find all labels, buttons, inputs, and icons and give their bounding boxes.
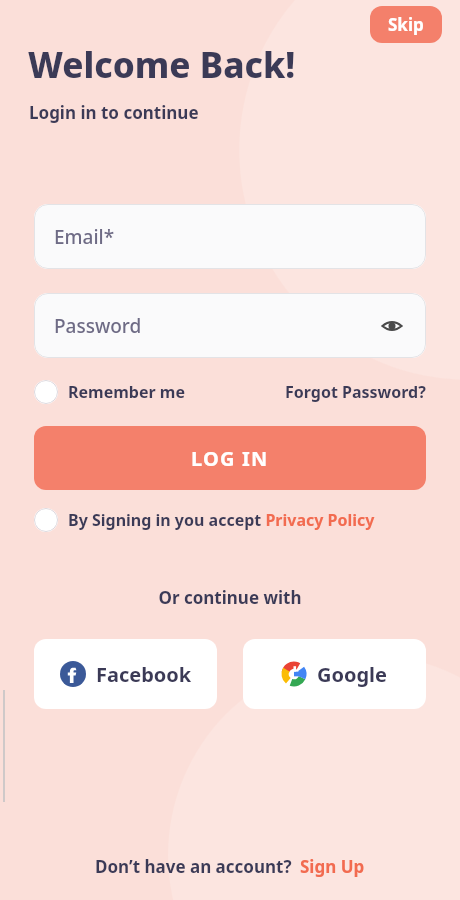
staticText: Sign Up — [300, 855, 365, 878]
button[interactable]: LOG IN — [34, 426, 426, 490]
staticText: Password — [54, 313, 142, 339]
staticText: Or continue with — [0, 586, 460, 609]
staticText: Login in to continue — [29, 101, 199, 124]
staticText: Google — [317, 661, 388, 688]
staticText: LOG IN — [191, 445, 269, 472]
staticText: Remember me — [68, 381, 185, 403]
button[interactable]: Remember me — [34, 380, 185, 404]
staticText: Welcome Back! — [28, 41, 296, 89]
button[interactable]: Password — [34, 293, 426, 358]
button[interactable]: By Signing in you accept Privacy Policy — [34, 508, 375, 532]
button[interactable]: Show password — [378, 312, 406, 340]
staticText: Skip — [388, 13, 424, 36]
staticText: Email* — [54, 224, 115, 250]
staticText: Forgot Password? — [285, 381, 426, 403]
button[interactable]: Skip — [370, 6, 442, 43]
button[interactable]: Google — [243, 639, 426, 709]
button[interactable]: Facebook — [34, 639, 217, 709]
staticText: By Signing in you accept Privacy Policy — [68, 509, 375, 531]
button[interactable]: Sign Up — [300, 855, 365, 878]
staticText: Don’t have an account? — [95, 855, 292, 878]
staticText: Facebook — [96, 661, 192, 688]
button[interactable]: Forgot Password? — [285, 381, 426, 403]
button[interactable]: Email* — [34, 204, 426, 269]
